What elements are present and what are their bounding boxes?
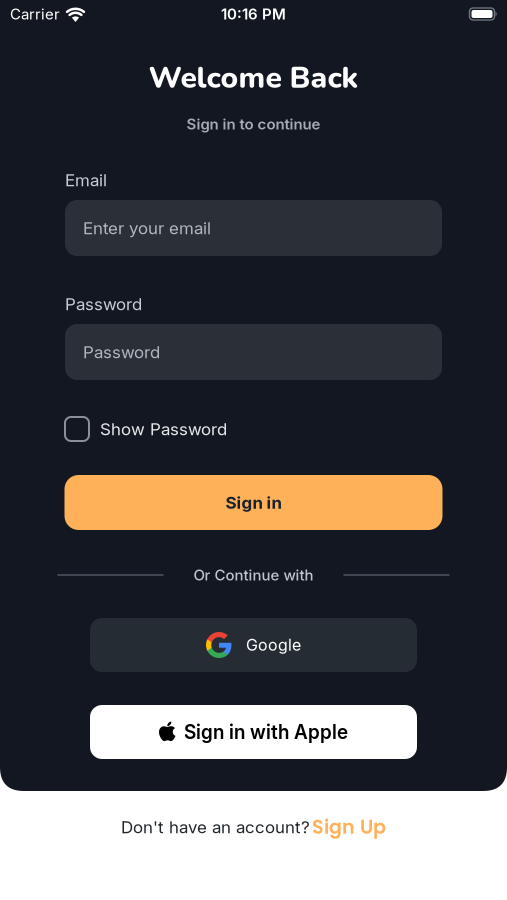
- staticText: Welcome Back: [148, 57, 358, 98]
- staticText: 10:16 PM: [221, 5, 286, 23]
- button[interactable]: Sign in: [64, 475, 442, 530]
- staticText: Sign in to continue: [186, 115, 320, 133]
- staticText: Google: [246, 636, 301, 654]
- staticText: Sign in with Apple: [184, 721, 348, 743]
- button[interactable]: Sign in with Apple: [90, 705, 417, 759]
- staticText: Show Password: [100, 419, 227, 439]
- staticText: Sign Up: [312, 814, 386, 840]
- staticText: Enter your email: [83, 218, 211, 238]
- button[interactable]: Sign Up: [312, 814, 386, 840]
- staticText: Password: [83, 342, 160, 362]
- staticText: Or Continue with: [193, 566, 313, 584]
- staticText: Email: [65, 170, 107, 190]
- staticText: Sign in: [225, 492, 281, 513]
- button[interactable]: Enter your email: [65, 200, 442, 256]
- button[interactable]: Password: [65, 324, 442, 380]
- button[interactable]: Google: [90, 618, 417, 672]
- button[interactable]: Show Password: [65, 417, 89, 441]
- staticText: Carrier: [10, 5, 60, 23]
- staticText: Don't have an account?: [121, 817, 310, 837]
- staticText: Password: [65, 294, 142, 314]
